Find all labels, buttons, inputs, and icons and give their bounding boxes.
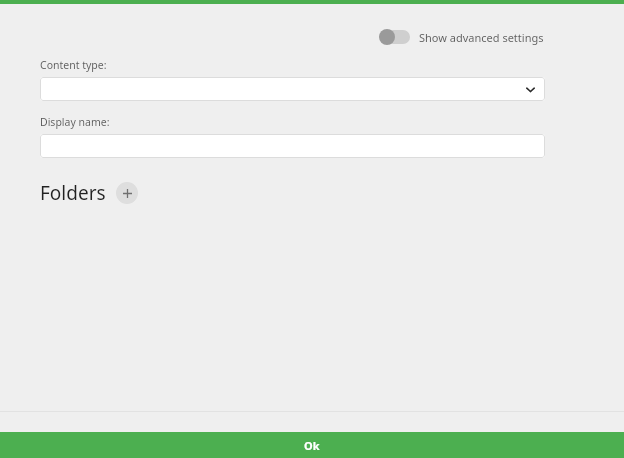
staticText: Display name: [40,115,110,129]
staticText: Content type: [40,58,107,72]
other: Show advanced settings toggle [379,28,411,46]
button[interactable]: Content type dropdown [40,77,545,101]
button[interactable]: Ok [0,432,624,458]
staticText: Show advanced settings [419,30,544,45]
staticText: Ok [304,438,320,453]
button[interactable]: Display name text field [40,134,545,158]
staticText: Folders [40,180,106,206]
button[interactable]: Add folder [116,182,138,204]
button[interactable]: Show advanced settings toggle [377,26,546,48]
